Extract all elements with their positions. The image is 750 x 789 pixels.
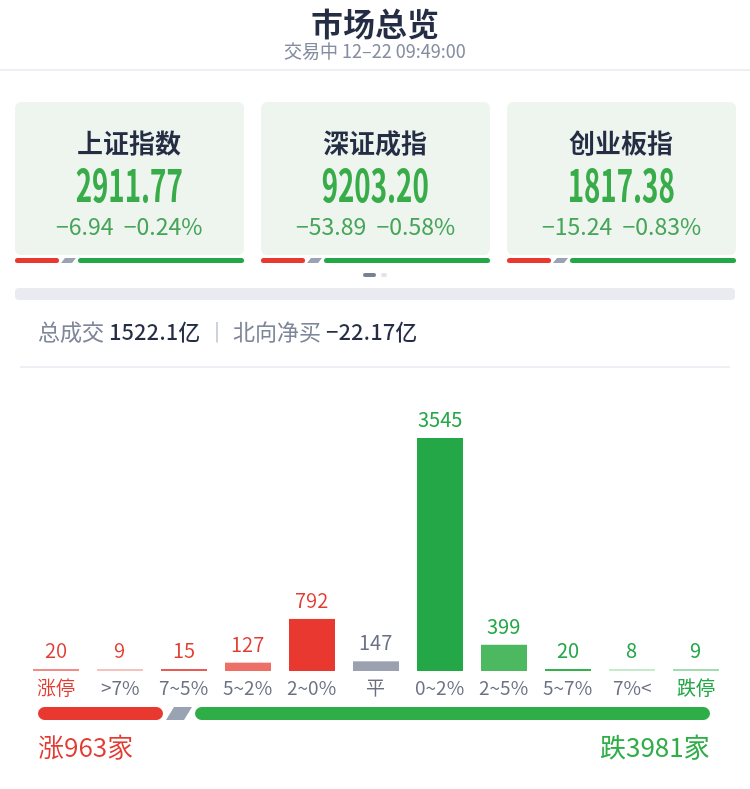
staticText: 交易中 12–22 09:49:00 xyxy=(284,37,466,63)
staticText: 1522.1亿 xyxy=(109,314,201,346)
staticText: 147 xyxy=(359,627,393,656)
staticText: 5~7% xyxy=(543,673,593,701)
staticText: 8 xyxy=(626,635,638,664)
staticText: 2~5% xyxy=(479,673,529,701)
staticText: 7%< xyxy=(613,673,652,701)
button[interactable]: 创业板指 xyxy=(507,102,736,263)
staticText: 北向净买 xyxy=(233,314,326,346)
staticText: 15 xyxy=(173,635,196,664)
staticText: 9 xyxy=(114,635,126,664)
staticText: 总成交 xyxy=(38,314,109,346)
staticText: 7~5% xyxy=(159,673,209,701)
staticText: 2~0% xyxy=(287,673,337,701)
staticText: 5~2% xyxy=(223,673,273,701)
button[interactable]: 上证指数 xyxy=(15,102,244,263)
staticText: 上证指数 xyxy=(77,123,182,161)
staticText: 创业板指 xyxy=(569,123,674,161)
staticText: 9203.20 xyxy=(322,151,429,215)
staticText: 9 xyxy=(690,635,702,664)
staticText: 0~2% xyxy=(415,673,465,701)
button[interactable]: 深证成指 xyxy=(261,102,490,263)
staticText: 3545 xyxy=(418,404,463,433)
staticText: 2911.77 xyxy=(76,151,183,215)
staticText: 深证成指 xyxy=(323,123,428,161)
staticText: −53.89 −0.58% xyxy=(296,208,456,241)
staticText: 1817.38 xyxy=(568,151,675,215)
staticText: >7% xyxy=(101,673,140,701)
staticText: 市场总览 xyxy=(311,0,440,45)
staticText: 127 xyxy=(231,629,265,658)
staticText: 20 xyxy=(557,635,580,664)
staticText: 399 xyxy=(487,611,521,640)
staticText: 丨 xyxy=(201,314,233,346)
staticText: −6.94 −0.24% xyxy=(56,208,203,241)
staticText: −22.17亿 xyxy=(326,314,418,346)
staticText: 792 xyxy=(295,585,329,614)
staticText: 跌3981家 xyxy=(600,727,710,765)
staticText: 涨停 xyxy=(37,673,76,701)
staticText: −15.24 −0.83% xyxy=(542,208,702,241)
staticText: 平 xyxy=(366,673,386,701)
staticText: 涨963家 xyxy=(38,727,134,765)
staticText: 跌停 xyxy=(677,673,716,701)
button[interactable]: 总成交 xyxy=(38,317,418,342)
staticText: 20 xyxy=(45,635,68,664)
